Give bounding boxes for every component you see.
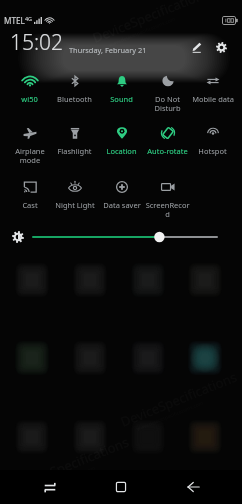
button[interactable]: Edit quick settings	[187, 37, 207, 57]
staticText: wi50	[21, 94, 38, 104]
button[interactable]: Auto-rotate	[144, 121, 191, 165]
staticText: 15:02	[10, 28, 64, 57]
staticText: DeviceSpecifications	[10, 433, 131, 496]
staticText: Flashlight	[57, 146, 92, 156]
button[interactable]: ScreenRecord	[144, 175, 191, 219]
button[interactable]: Sound	[98, 69, 145, 113]
staticText: DeviceSpecifications	[90, 0, 211, 47]
staticText: www.devicespecifications.com	[136, 399, 205, 433]
staticText: www.devicespecifications.com	[108, 15, 177, 49]
staticText: MTEL	[4, 15, 25, 26]
button[interactable]: Data saver	[98, 175, 145, 219]
button[interactable]: Cast	[6, 175, 53, 219]
staticText: Mobile data	[192, 94, 234, 104]
staticText: Hotspot	[198, 146, 227, 156]
staticText: Sound	[110, 94, 133, 104]
button[interactable]: Airplane mode	[6, 121, 53, 165]
staticText: Thursday, February 21	[69, 45, 147, 55]
staticText: Cast	[22, 200, 38, 210]
staticText: Location	[106, 146, 137, 156]
button[interactable]: Settings	[211, 37, 231, 57]
button[interactable]: Back	[171, 470, 215, 504]
button[interactable]: wi50	[6, 69, 53, 113]
staticText: Airplane mode	[15, 146, 45, 165]
staticText: www.devicespecifications.com	[28, 464, 97, 498]
staticText: DeviceSpecifications	[118, 368, 239, 431]
button[interactable]: Location	[98, 121, 145, 165]
staticText: 4G	[25, 15, 33, 22]
button[interactable]: Bluetooth	[51, 69, 98, 113]
button[interactable]: Home	[99, 470, 143, 504]
staticText: ScreenRecord	[144, 200, 191, 219]
button[interactable]: Recent apps	[28, 470, 72, 504]
button[interactable]: Night Light	[51, 175, 98, 219]
button[interactable]: Brightness	[31, 229, 222, 245]
staticText: Data saver	[103, 200, 141, 210]
staticText: Night Light	[55, 200, 95, 210]
button[interactable]: Flashlight	[51, 121, 98, 165]
button[interactable]: Mobile data	[189, 69, 236, 113]
staticText: Do Not Disturb	[154, 94, 181, 113]
button[interactable]: Hotspot	[189, 121, 236, 165]
staticText: Bluetooth	[57, 94, 92, 104]
button[interactable]: Do Not Disturb	[144, 69, 191, 113]
staticText: Auto-rotate	[147, 146, 188, 156]
